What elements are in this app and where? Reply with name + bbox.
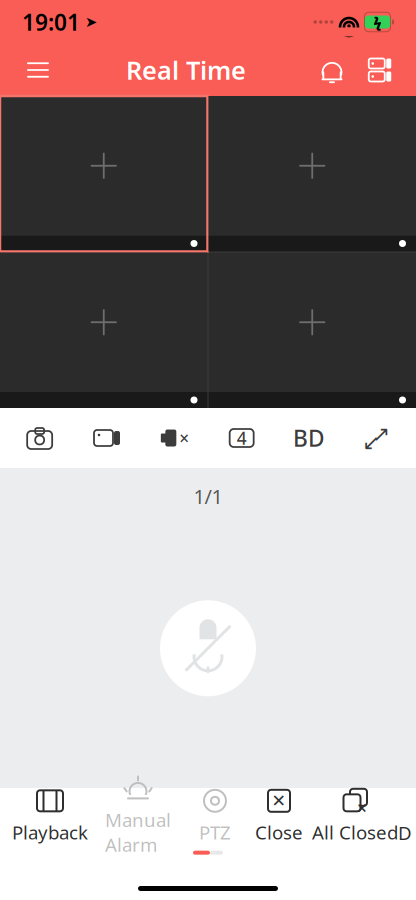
staticText: ↗ xyxy=(372,422,390,446)
staticText: × xyxy=(179,426,189,449)
staticText: 1/1 xyxy=(193,483,222,510)
button[interactable]: Add camera channel xyxy=(0,252,207,408)
staticText: ✕ xyxy=(271,791,286,811)
button[interactable]: Add camera channel xyxy=(208,252,416,408)
staticText: BD xyxy=(293,423,325,453)
button[interactable]: PTZ xyxy=(184,789,246,845)
button[interactable]: Manual Alarm xyxy=(92,789,184,845)
staticText: ➤ xyxy=(85,14,97,30)
staticText: × xyxy=(357,796,367,819)
staticText: Real Time xyxy=(126,53,246,87)
staticText: ϟ xyxy=(373,12,381,32)
button[interactable]: Full screen xyxy=(343,410,410,466)
button[interactable]: Menu xyxy=(12,44,64,96)
button[interactable]: Alarm notifications xyxy=(308,44,356,96)
staticText: PTZ xyxy=(199,820,231,845)
button[interactable]: Snapshot xyxy=(6,410,73,466)
button[interactable]: Microphone muted xyxy=(160,600,256,696)
staticText: Manual Alarm xyxy=(105,807,171,857)
staticText: All Closed xyxy=(312,820,398,845)
button[interactable]: Add camera channel xyxy=(208,96,416,251)
button[interactable]: Split screen layout, 4 channels xyxy=(208,410,275,466)
button[interactable]: × xyxy=(312,789,398,845)
button[interactable]: Record xyxy=(73,410,141,466)
button[interactable]: Device list xyxy=(356,44,404,96)
staticText: Close xyxy=(255,820,303,845)
button[interactable]: Audio muted xyxy=(141,410,208,466)
staticText: Playback xyxy=(12,820,88,845)
button[interactable]: Add camera channel xyxy=(0,96,207,251)
staticText: ↙ xyxy=(362,430,380,454)
staticText: D xyxy=(398,820,412,845)
button[interactable]: BD xyxy=(275,410,343,466)
staticText: 19:01 xyxy=(22,7,80,37)
staticText: 4 xyxy=(237,426,247,449)
button[interactable]: ✕ xyxy=(246,789,312,845)
button[interactable]: Playback xyxy=(8,789,92,845)
